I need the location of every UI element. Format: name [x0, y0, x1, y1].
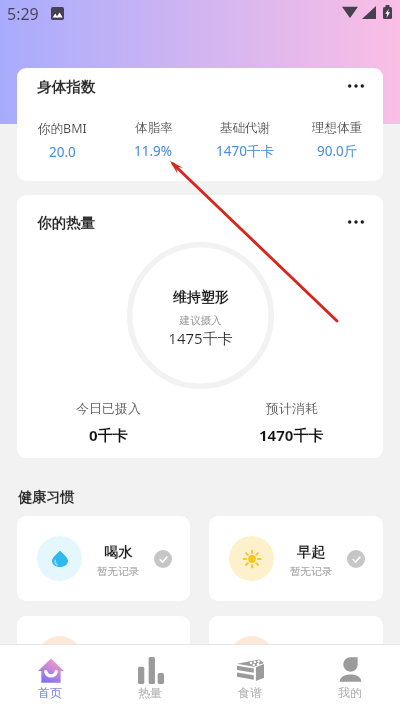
staticText: 20.0 [49, 143, 76, 161]
staticText: 1475千卡 [127, 328, 274, 348]
button[interactable]: 早睡 [17, 616, 190, 701]
staticText: 身体指数 [37, 78, 95, 96]
staticText: 11.9% [134, 142, 173, 160]
staticText: 1470千卡 [216, 142, 274, 160]
staticText: 首页 [38, 685, 62, 700]
staticText: 今日已摄入 [76, 400, 141, 416]
staticText: 基础代谢 [220, 120, 270, 136]
staticText: 0千卡 [89, 425, 128, 445]
staticText: 运动 [297, 644, 325, 662]
staticText: 暂无记录 [290, 565, 332, 578]
staticText: 你的BMI [38, 120, 87, 137]
button[interactable]: 喝水 [17, 516, 190, 601]
button[interactable]: Mark complete [154, 550, 172, 568]
staticText: 暂无记录 [97, 665, 139, 678]
staticText: 维持塑形 [127, 289, 274, 307]
staticText: 理想体重 [312, 120, 362, 136]
staticText: 早睡 [104, 644, 132, 662]
staticText: 建议摄入 [127, 314, 274, 327]
button[interactable]: 我的 [300, 645, 400, 711]
staticText: 喝水 [104, 544, 132, 562]
button[interactable]: 食谱 [200, 645, 300, 711]
button[interactable]: More options [336, 202, 376, 242]
staticText: 早起 [297, 544, 325, 562]
staticText: 我的 [338, 685, 362, 700]
staticText: 你的热量 [37, 214, 95, 232]
staticText: 体脂率 [135, 120, 173, 136]
button[interactable]: 热量 [100, 645, 200, 711]
button[interactable]: Mark complete [347, 650, 365, 668]
button[interactable]: Mark complete [347, 550, 365, 568]
staticText: 暂无记录 [97, 565, 139, 578]
staticText: 1470千卡 [259, 425, 324, 445]
staticText: 健康习惯 [18, 489, 74, 507]
staticText: 90.0斤 [317, 142, 358, 160]
button[interactable]: 运动 [209, 616, 383, 701]
button[interactable]: Mark complete [154, 650, 172, 668]
button[interactable]: 早起 [209, 516, 383, 601]
button[interactable]: 你的热量 [17, 195, 383, 458]
button[interactable]: 身体指数 [17, 68, 383, 181]
staticText: 食谱 [238, 685, 262, 700]
staticText: 热量 [138, 685, 162, 700]
button[interactable]: More options [336, 68, 376, 106]
button[interactable]: 首页 [0, 645, 100, 711]
staticText: 5:29 [7, 3, 39, 25]
staticText: 预计消耗 [266, 400, 318, 416]
